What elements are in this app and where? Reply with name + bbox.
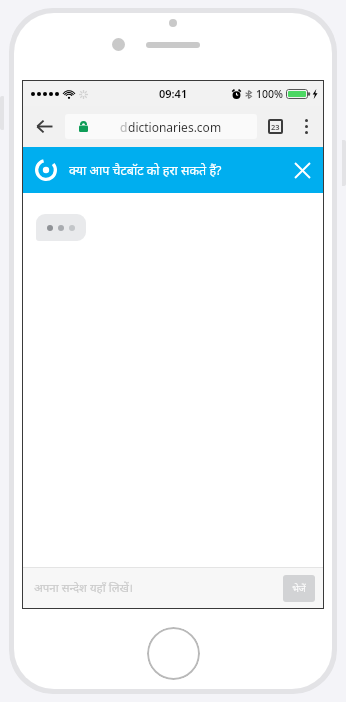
staticText: dictionaries.com: [128, 119, 222, 135]
staticText: अपना सन्देश यहाँ लिखें।: [34, 580, 134, 596]
button[interactable]: d: [65, 114, 257, 139]
button[interactable]: क्या आप चैटबॉट को हरा सकते हैं?: [23, 147, 323, 193]
button[interactable]: Back: [23, 106, 65, 147]
button[interactable]: अपना सन्देश यहाँ लिखें।: [23, 568, 283, 608]
button[interactable]: Tabs, 23 open: [257, 106, 293, 147]
staticText: क्या आप चैटबॉट को हरा सकते हैं?: [69, 162, 279, 179]
staticText: 23: [271, 122, 280, 132]
staticText: 09:41: [159, 86, 188, 101]
button[interactable]: भेजें: [283, 575, 315, 602]
button[interactable]: Close: [283, 151, 321, 189]
staticText: भेजें: [292, 582, 306, 595]
button[interactable]: More options: [293, 106, 319, 147]
staticText: d: [120, 119, 128, 135]
staticText: 100%: [256, 87, 283, 101]
